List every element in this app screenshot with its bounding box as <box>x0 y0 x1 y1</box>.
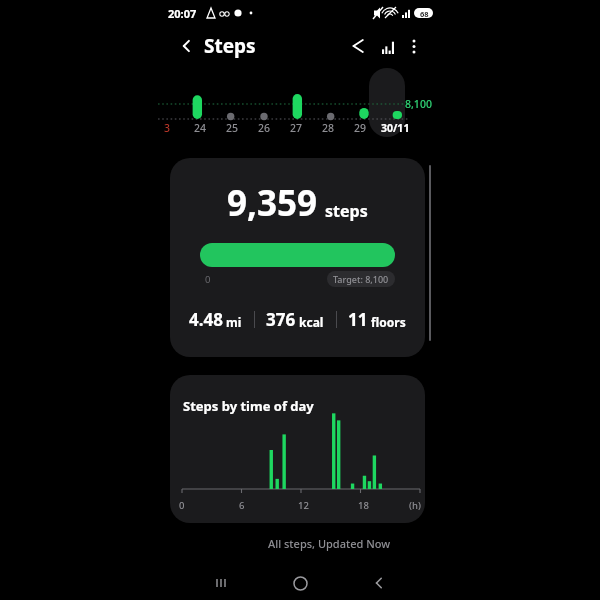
staticText: Steps by time of day <box>183 397 314 415</box>
button[interactable]: Back <box>363 567 395 599</box>
staticText: 27 <box>290 121 303 135</box>
staticText: 3 <box>164 121 171 135</box>
button[interactable]: Share <box>344 32 372 60</box>
staticText: floors <box>371 314 406 330</box>
button[interactable]: 9,359 <box>170 158 425 357</box>
staticText: 11 <box>348 308 368 331</box>
staticText: (h) <box>409 499 421 512</box>
button[interactable]: More options <box>400 32 428 60</box>
staticText: 0 <box>205 273 211 286</box>
button[interactable]: Chart <box>374 32 402 60</box>
staticText: steps <box>325 200 368 222</box>
staticText: 30/11 <box>381 121 410 135</box>
staticText: 6 <box>239 499 245 512</box>
staticText: 68 <box>420 9 429 19</box>
staticText: Steps <box>204 33 256 59</box>
button[interactable]: Back <box>172 31 202 61</box>
staticText: kcal <box>299 314 324 330</box>
button[interactable]: Steps by time of day <box>170 375 425 523</box>
staticText: 4.48 <box>189 308 223 331</box>
staticText: 12 <box>298 499 309 512</box>
staticText: 376 <box>266 308 296 331</box>
staticText: 18 <box>358 499 369 512</box>
staticText: 25 <box>226 121 239 135</box>
button[interactable] <box>369 68 405 137</box>
staticText: Target: 8,100 <box>333 273 389 285</box>
button[interactable]: Recents <box>205 567 237 599</box>
staticText: 28 <box>322 121 335 135</box>
staticText: 9,359 <box>227 179 318 227</box>
staticText: All steps, Updated Now <box>268 536 391 551</box>
button[interactable]: Home <box>284 567 316 599</box>
staticText: mi <box>226 314 242 330</box>
staticText: 26 <box>258 121 271 135</box>
staticText: 20:07 <box>168 6 197 21</box>
staticText: 29 <box>354 121 367 135</box>
staticText: 0 <box>179 499 185 512</box>
staticText: 8,100 <box>405 97 432 111</box>
staticText: 24 <box>194 121 207 135</box>
